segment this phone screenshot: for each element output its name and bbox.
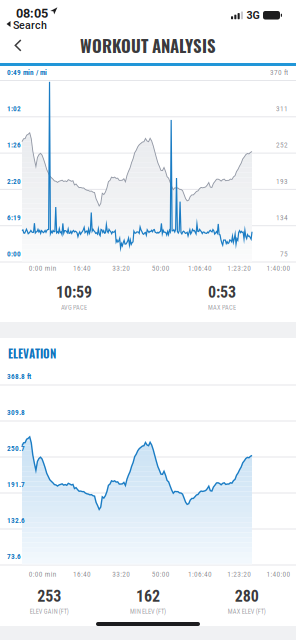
staticText: 0:00 min (29, 570, 57, 579)
staticText: 250.7 (7, 444, 25, 453)
staticText: 33:20 (112, 264, 130, 273)
staticText: AVG PACE (61, 304, 87, 311)
staticText: 08:05 (16, 6, 48, 21)
staticText: 193 (276, 177, 288, 186)
staticText: 368.8 ft (7, 372, 31, 381)
staticText: 33:20 (112, 570, 130, 579)
staticText: 252 (276, 141, 288, 149)
button[interactable]: Back (2, 31, 34, 60)
staticText: 75 (280, 250, 288, 258)
staticText: 0:00 (7, 250, 21, 258)
staticText: Search (13, 19, 47, 31)
staticText: 50:00 (152, 264, 170, 273)
staticText: 16:40 (73, 264, 91, 273)
staticText: MAX ELEV (FT) (228, 608, 266, 615)
staticText: MAX PACE (208, 304, 236, 311)
staticText: ELEVATION (8, 345, 56, 362)
staticText: 10:59 (56, 283, 92, 302)
staticText: 134 (276, 213, 288, 222)
staticText: 50:00 (152, 570, 170, 579)
staticText: 280 (235, 587, 259, 606)
staticText: 73.6 (7, 552, 21, 561)
staticText: MIN ELEV (FT) (130, 608, 166, 615)
staticText: 1:06:40 (188, 264, 212, 273)
staticText: 162 (136, 587, 160, 606)
staticText: 132.6 (7, 516, 25, 525)
staticText: 191.7 (7, 480, 25, 489)
staticText: 1:02 (7, 104, 21, 113)
staticText: 1:26 (7, 141, 21, 149)
staticText: 0:00 min (29, 264, 57, 273)
staticText: 253 (37, 587, 61, 606)
staticText: 1:40:00 (267, 570, 291, 579)
staticText: 16:40 (73, 570, 91, 579)
staticText: 0:53 (208, 283, 236, 302)
staticText: 2:20 (7, 177, 21, 186)
staticText: 1:06:40 (188, 570, 212, 579)
staticText: 311 (276, 104, 288, 113)
staticText: 1:23:20 (227, 570, 251, 579)
staticText: 1:40:00 (267, 264, 291, 273)
staticText: WORKOUT ANALYSIS (80, 33, 216, 58)
staticText: 3G (246, 9, 259, 21)
staticText: 309.8 (7, 408, 25, 417)
staticText: 0:49 min / mi (7, 68, 47, 77)
staticText: 1:23:20 (227, 264, 251, 273)
staticText: ELEV GAIN (FT) (30, 608, 69, 615)
staticText: 6:19 (7, 213, 21, 222)
staticText: 370 ft (270, 68, 288, 77)
